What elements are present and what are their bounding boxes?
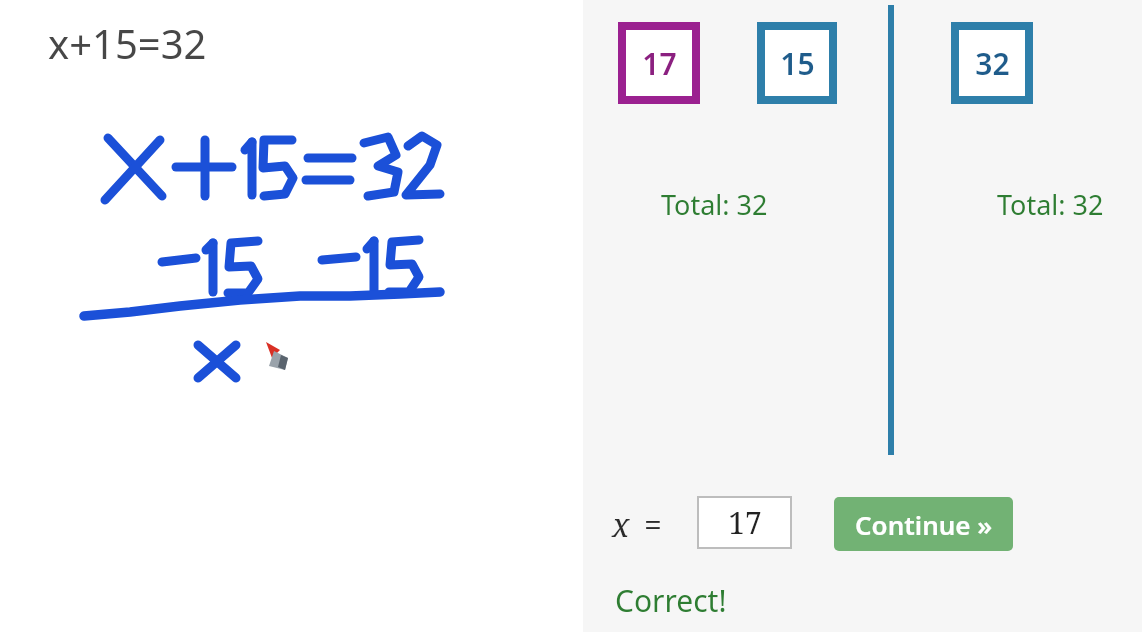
staticText: Total: 32: [997, 186, 1104, 223]
staticText: x: [612, 503, 630, 547]
staticText: x+15=32: [48, 16, 207, 70]
staticText: 17: [728, 502, 762, 543]
staticText: 32: [975, 43, 1010, 84]
staticText: =: [644, 503, 662, 547]
button[interactable]: Continue »: [834, 497, 1013, 551]
button[interactable]: Number tile 15: [757, 22, 837, 104]
staticText: Continue »: [855, 507, 993, 542]
staticText: Correct!: [615, 580, 727, 621]
button[interactable]: 17: [697, 496, 792, 549]
staticText: Total: 32: [661, 186, 768, 223]
staticText: 17: [642, 43, 677, 84]
button[interactable]: Number tile 17: [618, 22, 700, 104]
button[interactable]: Number tile 32: [951, 22, 1033, 104]
staticText: 15: [780, 43, 815, 84]
